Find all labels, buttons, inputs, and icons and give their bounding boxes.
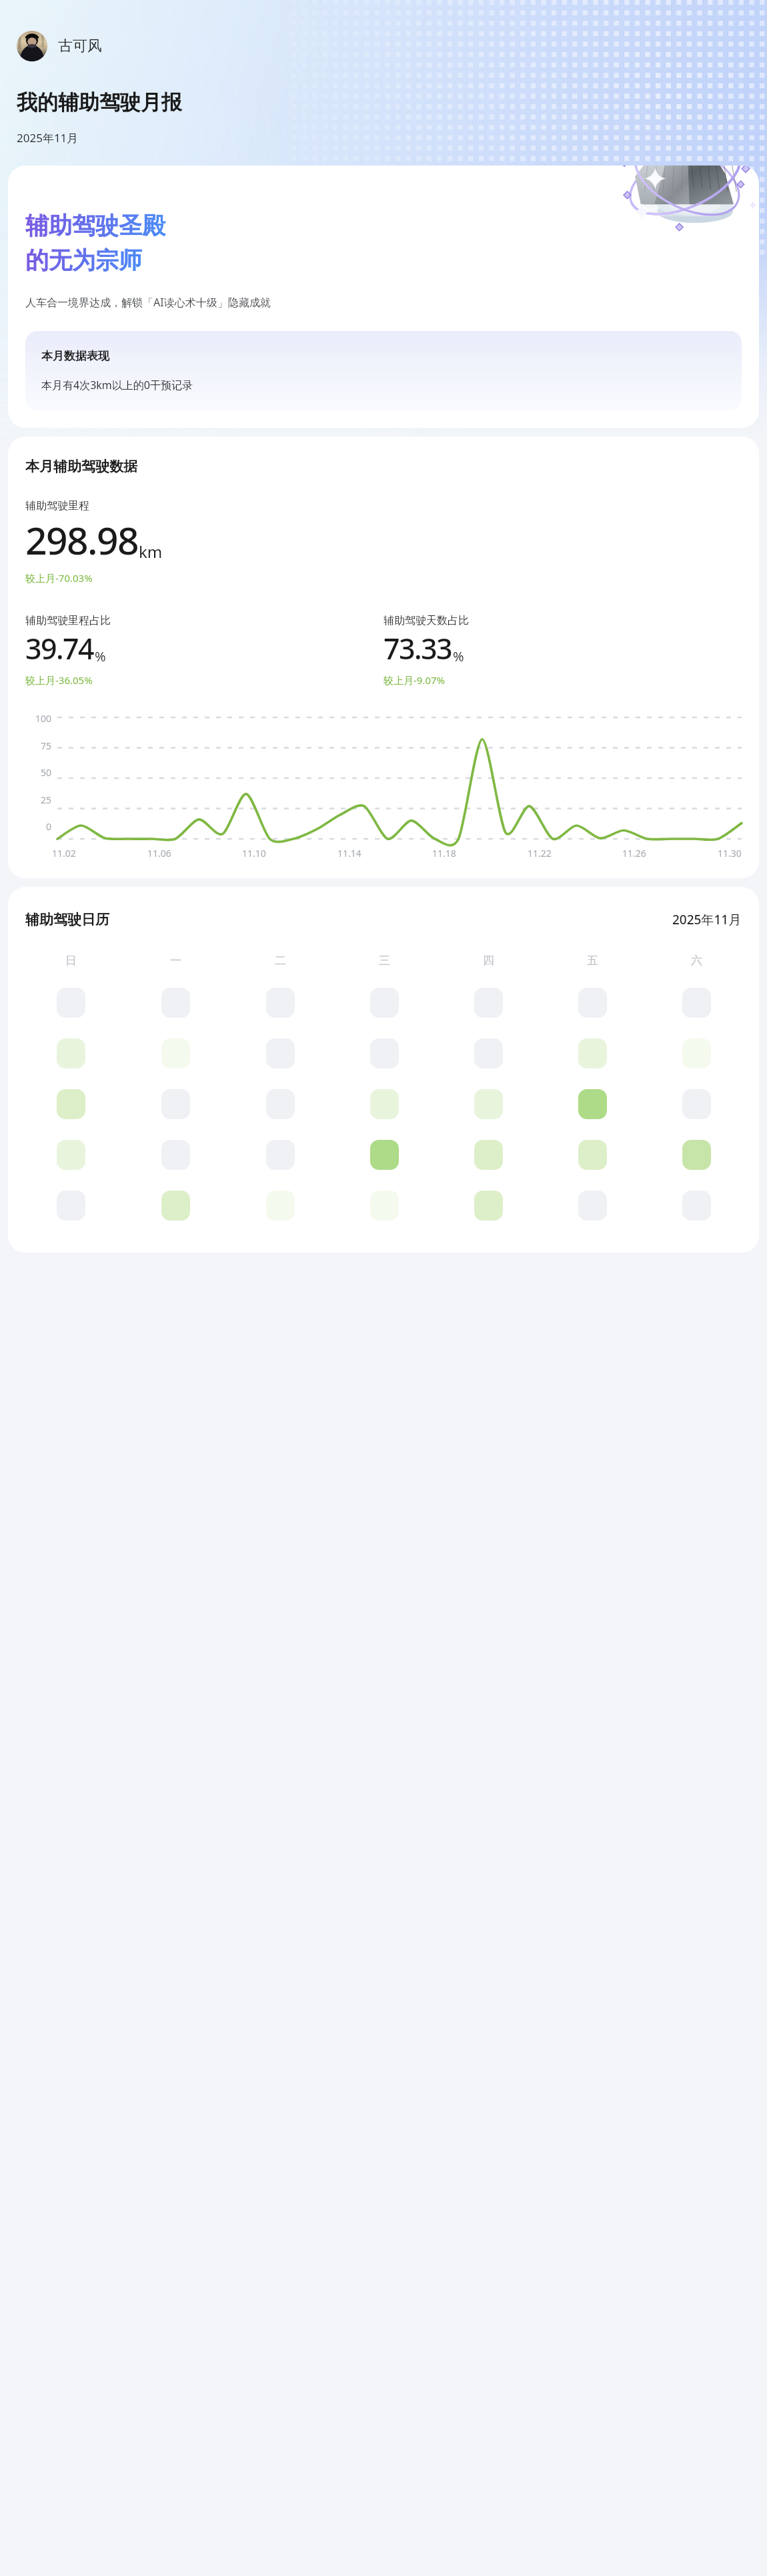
staticText: 较上月-9.07%: [383, 673, 446, 687]
staticText: 五: [587, 954, 598, 968]
staticText: 25: [41, 793, 52, 806]
staticText: 三: [379, 954, 390, 968]
button[interactable]: [682, 1191, 711, 1221]
staticText: 我的辅助驾驶月报: [17, 89, 182, 115]
button[interactable]: Profile photo: [17, 31, 102, 61]
button[interactable]: [57, 988, 85, 1018]
button[interactable]: [474, 988, 503, 1018]
staticText: 11.18: [432, 847, 456, 860]
button[interactable]: [578, 1038, 607, 1068]
staticText: 11.22: [528, 847, 552, 860]
staticText: 本月辅助驾驶数据: [25, 458, 137, 475]
button[interactable]: [370, 1038, 399, 1068]
staticText: 11.14: [337, 847, 361, 860]
staticText: 2025年11月: [17, 130, 79, 145]
button[interactable]: [578, 1140, 607, 1170]
staticText: 的无为宗师: [25, 246, 142, 275]
other: Profile photo: [17, 31, 47, 61]
staticText: km: [139, 541, 163, 563]
button[interactable]: [161, 1089, 190, 1119]
staticText: 辅助驾驶里程占比: [25, 614, 111, 627]
button[interactable]: [370, 1089, 399, 1119]
button[interactable]: [370, 1140, 399, 1170]
staticText: 一: [170, 954, 181, 968]
staticText: 73.33: [383, 629, 452, 668]
button[interactable]: [266, 988, 295, 1018]
button[interactable]: [57, 1140, 85, 1170]
button[interactable]: 本月辅助驾驶数据: [8, 436, 759, 878]
staticText: 二: [275, 954, 286, 968]
staticText: 本月数据表现: [41, 349, 109, 363]
button[interactable]: [370, 988, 399, 1018]
staticText: 日: [65, 954, 77, 968]
staticText: 较上月-70.03%: [25, 571, 93, 585]
staticText: 本月有4次3km以上的0干预记录: [41, 378, 193, 392]
button[interactable]: [578, 1089, 607, 1119]
staticText: 100: [35, 712, 52, 725]
button[interactable]: [682, 1038, 711, 1068]
staticText: 50: [41, 766, 52, 779]
button[interactable]: [266, 1191, 295, 1221]
staticText: 人车合一境界达成，解锁「AI读心术十级」隐藏成就: [25, 295, 271, 310]
button[interactable]: [161, 1140, 190, 1170]
staticText: 39.74: [25, 629, 94, 668]
staticText: 六: [691, 954, 702, 968]
button[interactable]: [57, 1089, 85, 1119]
staticText: 11.02: [52, 847, 76, 860]
button[interactable]: 辅助驾驶圣殿: [8, 166, 759, 428]
staticText: 298.98: [25, 514, 138, 566]
button[interactable]: [682, 1089, 711, 1119]
staticText: 较上月-36.05%: [25, 673, 93, 687]
staticText: 11.06: [147, 847, 171, 860]
button[interactable]: [266, 1038, 295, 1068]
staticText: 辅助驾驶圣殿: [25, 211, 165, 240]
button[interactable]: [161, 1038, 190, 1068]
button[interactable]: [474, 1140, 503, 1170]
button[interactable]: [370, 1191, 399, 1221]
button[interactable]: [57, 1191, 85, 1221]
button[interactable]: 辅助驾驶日历: [8, 887, 759, 1253]
button[interactable]: [266, 1140, 295, 1170]
staticText: 11.10: [242, 847, 266, 860]
staticText: 四: [483, 954, 494, 968]
button[interactable]: [682, 988, 711, 1018]
staticText: 辅助驾驶里程: [25, 499, 89, 513]
button[interactable]: [161, 988, 190, 1018]
staticText: 辅助驾驶天数占比: [383, 614, 469, 627]
staticText: 11.26: [622, 847, 646, 860]
staticText: 古可风: [58, 37, 102, 55]
staticText: 75: [41, 739, 52, 752]
staticText: 辅助驾驶日历: [25, 911, 109, 928]
button[interactable]: [57, 1038, 85, 1068]
staticText: %: [453, 647, 464, 665]
button[interactable]: [161, 1191, 190, 1221]
button[interactable]: [474, 1089, 503, 1119]
button[interactable]: [578, 1191, 607, 1221]
button[interactable]: [474, 1191, 503, 1221]
button[interactable]: [682, 1140, 711, 1170]
staticText: 2025年11月: [672, 911, 742, 928]
button[interactable]: [474, 1038, 503, 1068]
button[interactable]: [266, 1089, 295, 1119]
staticText: 11.30: [718, 847, 742, 860]
staticText: 0: [46, 820, 52, 833]
staticText: %: [95, 647, 106, 665]
button[interactable]: [578, 988, 607, 1018]
